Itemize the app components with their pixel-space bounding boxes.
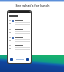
staticText: See what's for lunch — [15, 3, 50, 8]
